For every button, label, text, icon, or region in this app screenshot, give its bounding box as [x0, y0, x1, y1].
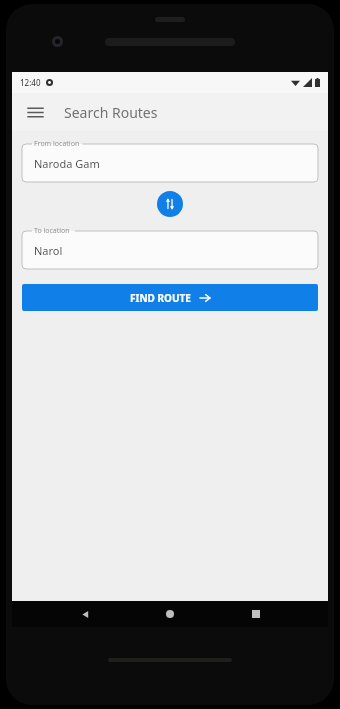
button[interactable]: FIND ROUTE — [22, 284, 318, 311]
staticText: From location — [34, 139, 80, 149]
button[interactable]: From location — [22, 139, 318, 182]
button[interactable]: To location — [22, 226, 318, 269]
staticText: 12:40 — [20, 77, 41, 88]
staticText: Narol — [34, 243, 63, 258]
staticText: FIND ROUTE — [130, 291, 191, 305]
staticText: Search Routes — [64, 103, 158, 122]
button[interactable]: Open navigation menu — [22, 99, 48, 125]
button[interactable]: Recent apps — [243, 601, 269, 627]
button[interactable]: Swap locations — [157, 191, 183, 217]
button[interactable]: Back — [72, 601, 98, 627]
staticText: Naroda Gam — [34, 156, 100, 171]
staticText: To location — [34, 226, 70, 236]
button[interactable]: Home — [157, 601, 183, 627]
